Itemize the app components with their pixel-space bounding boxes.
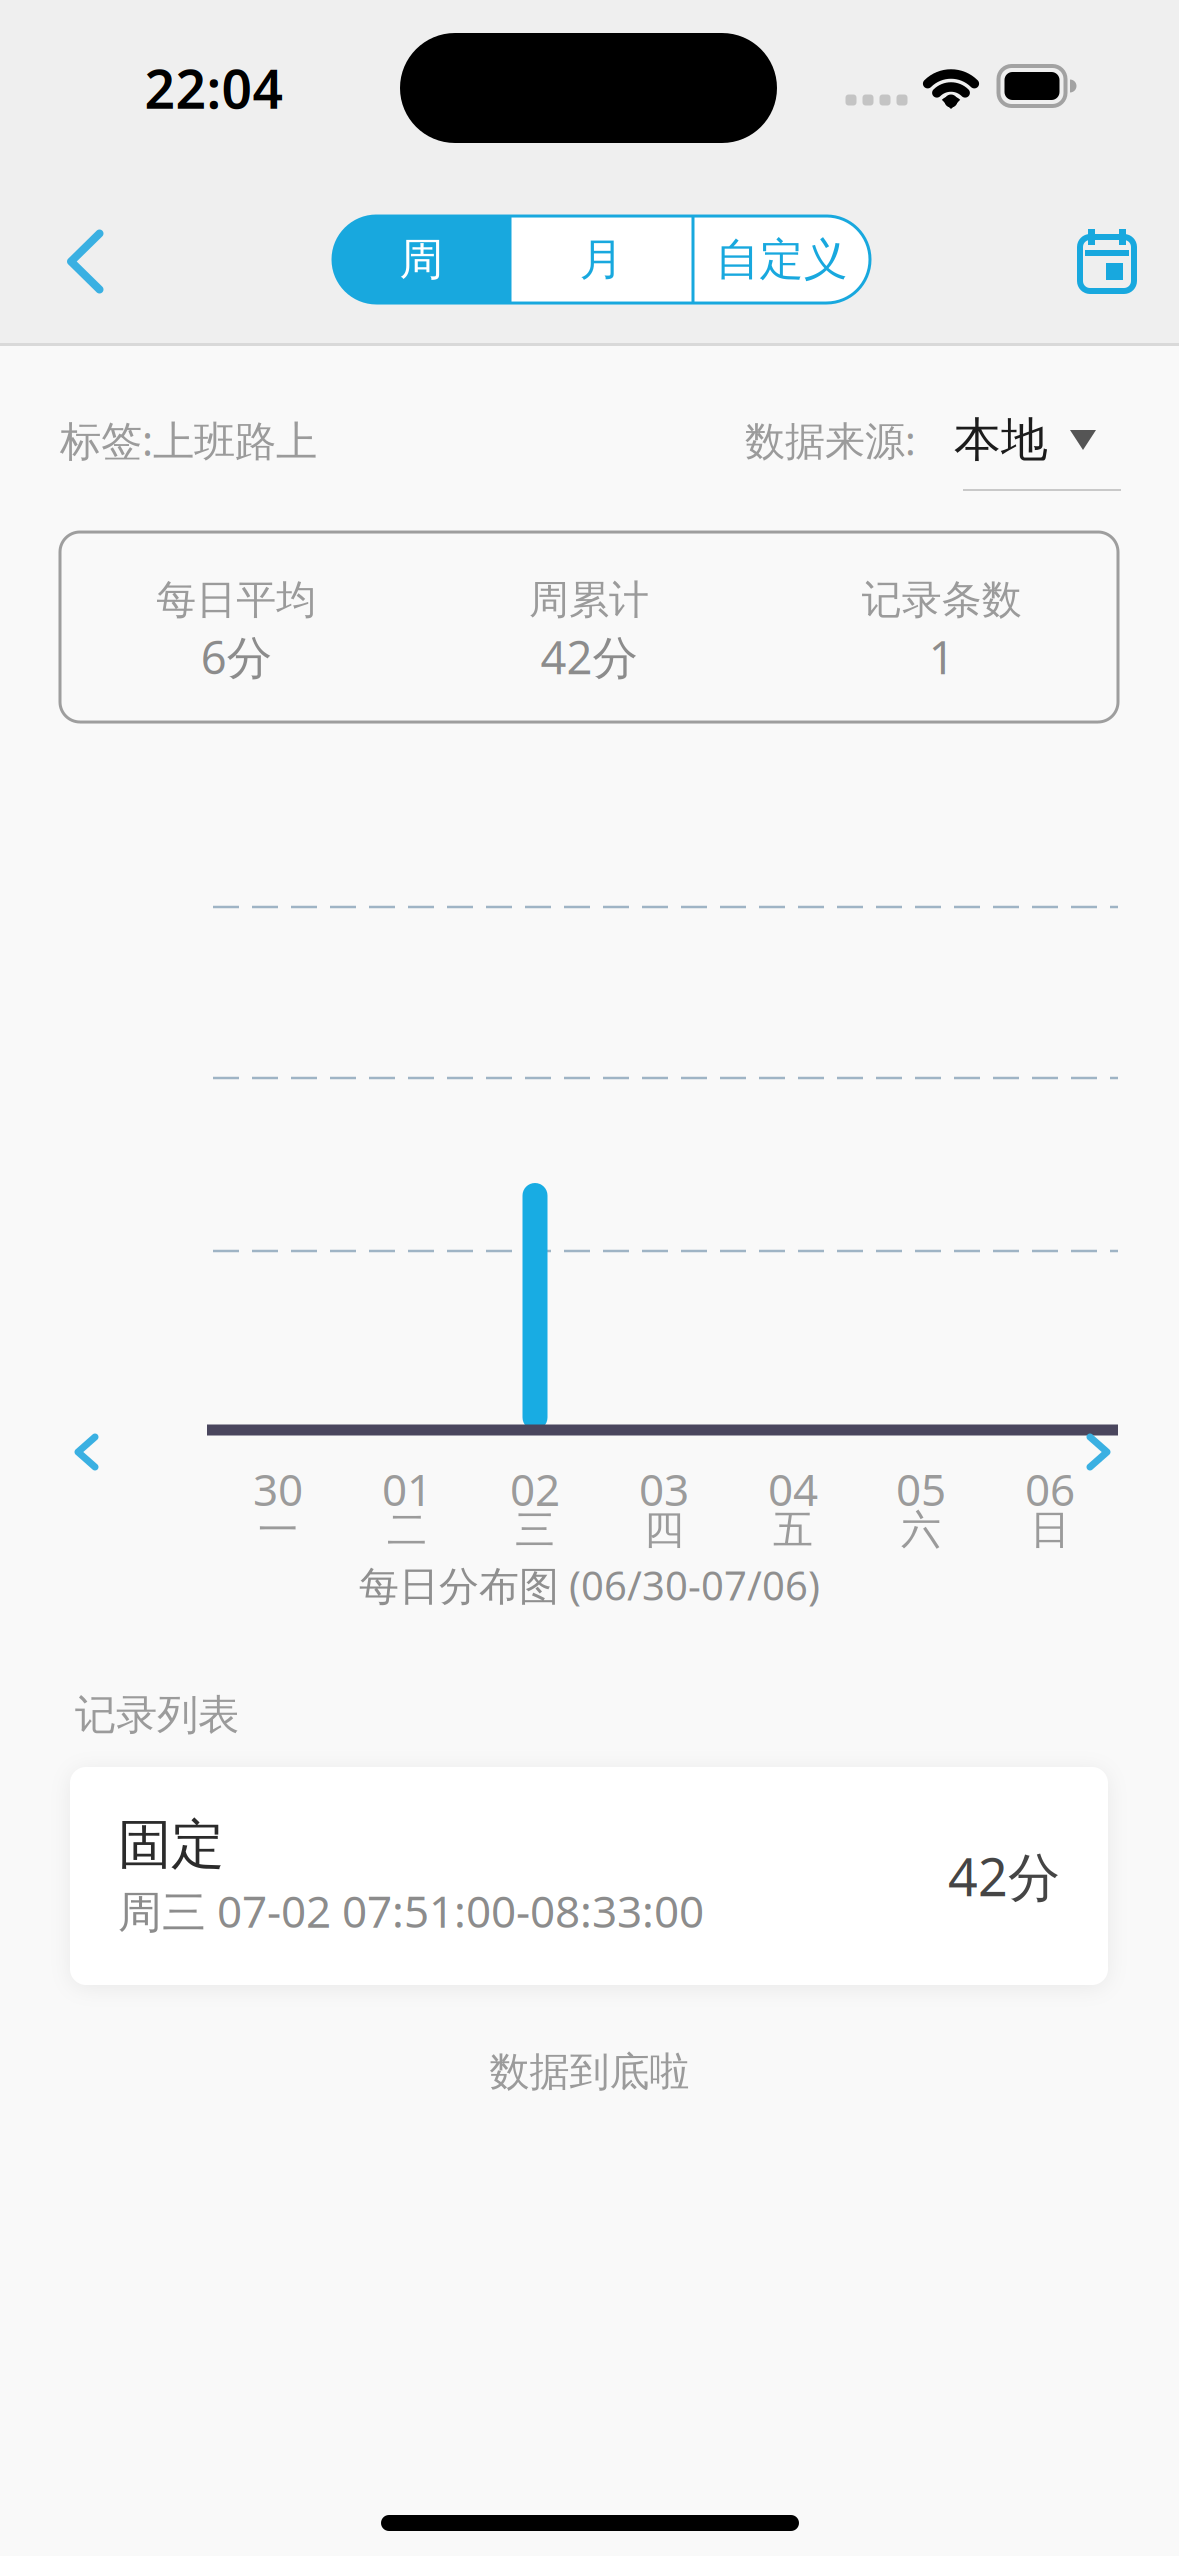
staticText: 01 xyxy=(382,1460,432,1518)
staticText: 03 xyxy=(639,1460,689,1518)
staticText: 固定 xyxy=(118,1812,224,1877)
staticText: 标签:上班路上 xyxy=(60,413,317,467)
staticText: 记录条数 xyxy=(862,575,1022,624)
staticText: 02 xyxy=(510,1460,560,1518)
staticText: 6分 xyxy=(201,626,272,687)
staticText: 三 xyxy=(515,1505,555,1554)
staticText: 30 xyxy=(253,1460,303,1518)
staticText: 每日分布图 (06/30-07/06) xyxy=(359,1558,820,1611)
staticText: 一 xyxy=(258,1505,298,1554)
staticText: 自定义 xyxy=(715,232,847,286)
staticText: 1 xyxy=(929,626,955,687)
staticText: 二 xyxy=(387,1505,427,1554)
staticText: 05 xyxy=(896,1460,946,1518)
staticText: 六 xyxy=(901,1505,941,1554)
staticText: 数据来源: xyxy=(745,413,916,466)
staticText: 四 xyxy=(644,1505,684,1554)
staticText: 本地 xyxy=(954,411,1048,469)
staticText: 记录列表 xyxy=(75,1690,239,1740)
staticText: 06 xyxy=(1025,1460,1075,1518)
staticText: 数据到底啦 xyxy=(489,2047,689,2096)
staticText: 每日平均 xyxy=(156,575,316,624)
staticText: 22:04 xyxy=(144,53,283,123)
staticText: 日 xyxy=(1030,1505,1070,1554)
staticText: 周累计 xyxy=(529,575,649,624)
staticText: 周三 07-02 07:51:00-08:33:00 xyxy=(118,1881,704,1940)
staticText: 五 xyxy=(773,1505,813,1554)
staticText: 周 xyxy=(399,232,443,286)
staticText: 04 xyxy=(768,1460,818,1518)
staticText: 42分 xyxy=(540,626,637,687)
staticText: 42分 xyxy=(948,1841,1060,1911)
staticText: 月 xyxy=(579,232,623,286)
